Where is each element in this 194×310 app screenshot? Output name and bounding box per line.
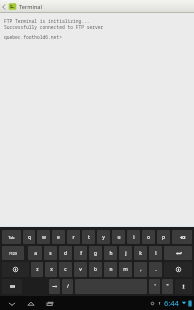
button[interactable]: Next (49, 279, 60, 294)
staticText: ' (154, 283, 156, 290)
button[interactable]: w (37, 230, 50, 244)
staticText: 6:44 (164, 298, 179, 308)
button[interactable]: Voice input (175, 279, 192, 294)
staticText: e (57, 234, 60, 241)
button[interactable]: x (45, 262, 57, 277)
button[interactable]: Enter (164, 246, 192, 260)
button[interactable]: i (127, 230, 140, 244)
staticText: d (64, 250, 67, 257)
button[interactable]: a (28, 246, 42, 260)
button[interactable]: Shift (2, 262, 29, 277)
staticText: w (42, 234, 46, 241)
button[interactable]: Recent apps (43, 297, 56, 310)
button[interactable]: g (89, 246, 102, 260)
button[interactable]: b (89, 262, 102, 277)
button[interactable]: , (134, 262, 147, 277)
staticText: b (94, 266, 97, 273)
staticText: v (79, 266, 82, 273)
staticText: q (28, 234, 31, 241)
staticText: t (88, 234, 90, 241)
staticText: h (109, 250, 113, 257)
staticText: Terminal (19, 3, 42, 10)
staticText: k (139, 250, 142, 257)
button[interactable]: Keyboard settings (2, 279, 22, 294)
button[interactable]: Back (5, 297, 18, 310)
staticText: u (117, 234, 121, 241)
button[interactable]: Home (24, 297, 37, 310)
staticText: quebec.foothold6.net> (4, 34, 62, 40)
staticText: z (36, 266, 39, 273)
button[interactable]: z (31, 262, 43, 277)
button[interactable]: f (74, 246, 87, 260)
button[interactable]: r (67, 230, 80, 244)
staticText: a (34, 250, 37, 257)
staticText: i (133, 234, 135, 241)
button[interactable]: y (97, 230, 110, 244)
staticText: x (50, 266, 53, 273)
staticText: m (123, 266, 128, 273)
staticText: Tab (8, 235, 15, 240)
button[interactable]: Backspace (172, 230, 192, 244)
button[interactable]: e (52, 230, 65, 244)
button[interactable]: ' (149, 279, 160, 294)
button[interactable]: d (59, 246, 72, 260)
button[interactable]: k (134, 246, 147, 260)
staticText: , (140, 266, 142, 273)
button[interactable]: m (119, 262, 132, 277)
staticText: s (49, 250, 52, 257)
staticText: r (72, 234, 75, 241)
button[interactable]: h (104, 246, 117, 260)
button[interactable]: s (44, 246, 57, 260)
staticText: g (94, 250, 97, 257)
staticText: p (162, 234, 165, 241)
button[interactable]: j (119, 246, 132, 260)
staticText: ?123 (9, 251, 17, 256)
staticText: " (166, 283, 169, 290)
button[interactable]: p (157, 230, 170, 244)
button[interactable]: . (149, 262, 162, 277)
button[interactable]: Shift (164, 262, 192, 277)
staticText: o (147, 234, 150, 241)
button[interactable]: Navigate up (0, 0, 8, 13)
staticText: n (109, 266, 113, 273)
button[interactable]: v (74, 262, 87, 277)
button[interactable]: l (149, 246, 162, 260)
staticText: l (155, 250, 157, 257)
button[interactable]: n (104, 262, 117, 277)
button[interactable]: q (23, 230, 35, 244)
button[interactable]: ?123 (2, 246, 24, 260)
button[interactable]: c (59, 262, 72, 277)
staticText: f (80, 250, 82, 257)
staticText: . (155, 266, 157, 273)
button[interactable]: Tab (2, 230, 21, 244)
button[interactable]: " (162, 279, 173, 294)
staticText: c (64, 266, 67, 273)
staticText: / (67, 283, 69, 290)
button[interactable]: u (112, 230, 125, 244)
staticText: y (102, 234, 105, 241)
button[interactable]: t (82, 230, 95, 244)
button[interactable]: o (142, 230, 155, 244)
staticText: j (125, 250, 127, 257)
staticText: FTP Terminal is initializing... (4, 18, 90, 24)
button[interactable]: / (62, 279, 73, 294)
staticText: Successfully connected to FTP server (4, 24, 104, 30)
